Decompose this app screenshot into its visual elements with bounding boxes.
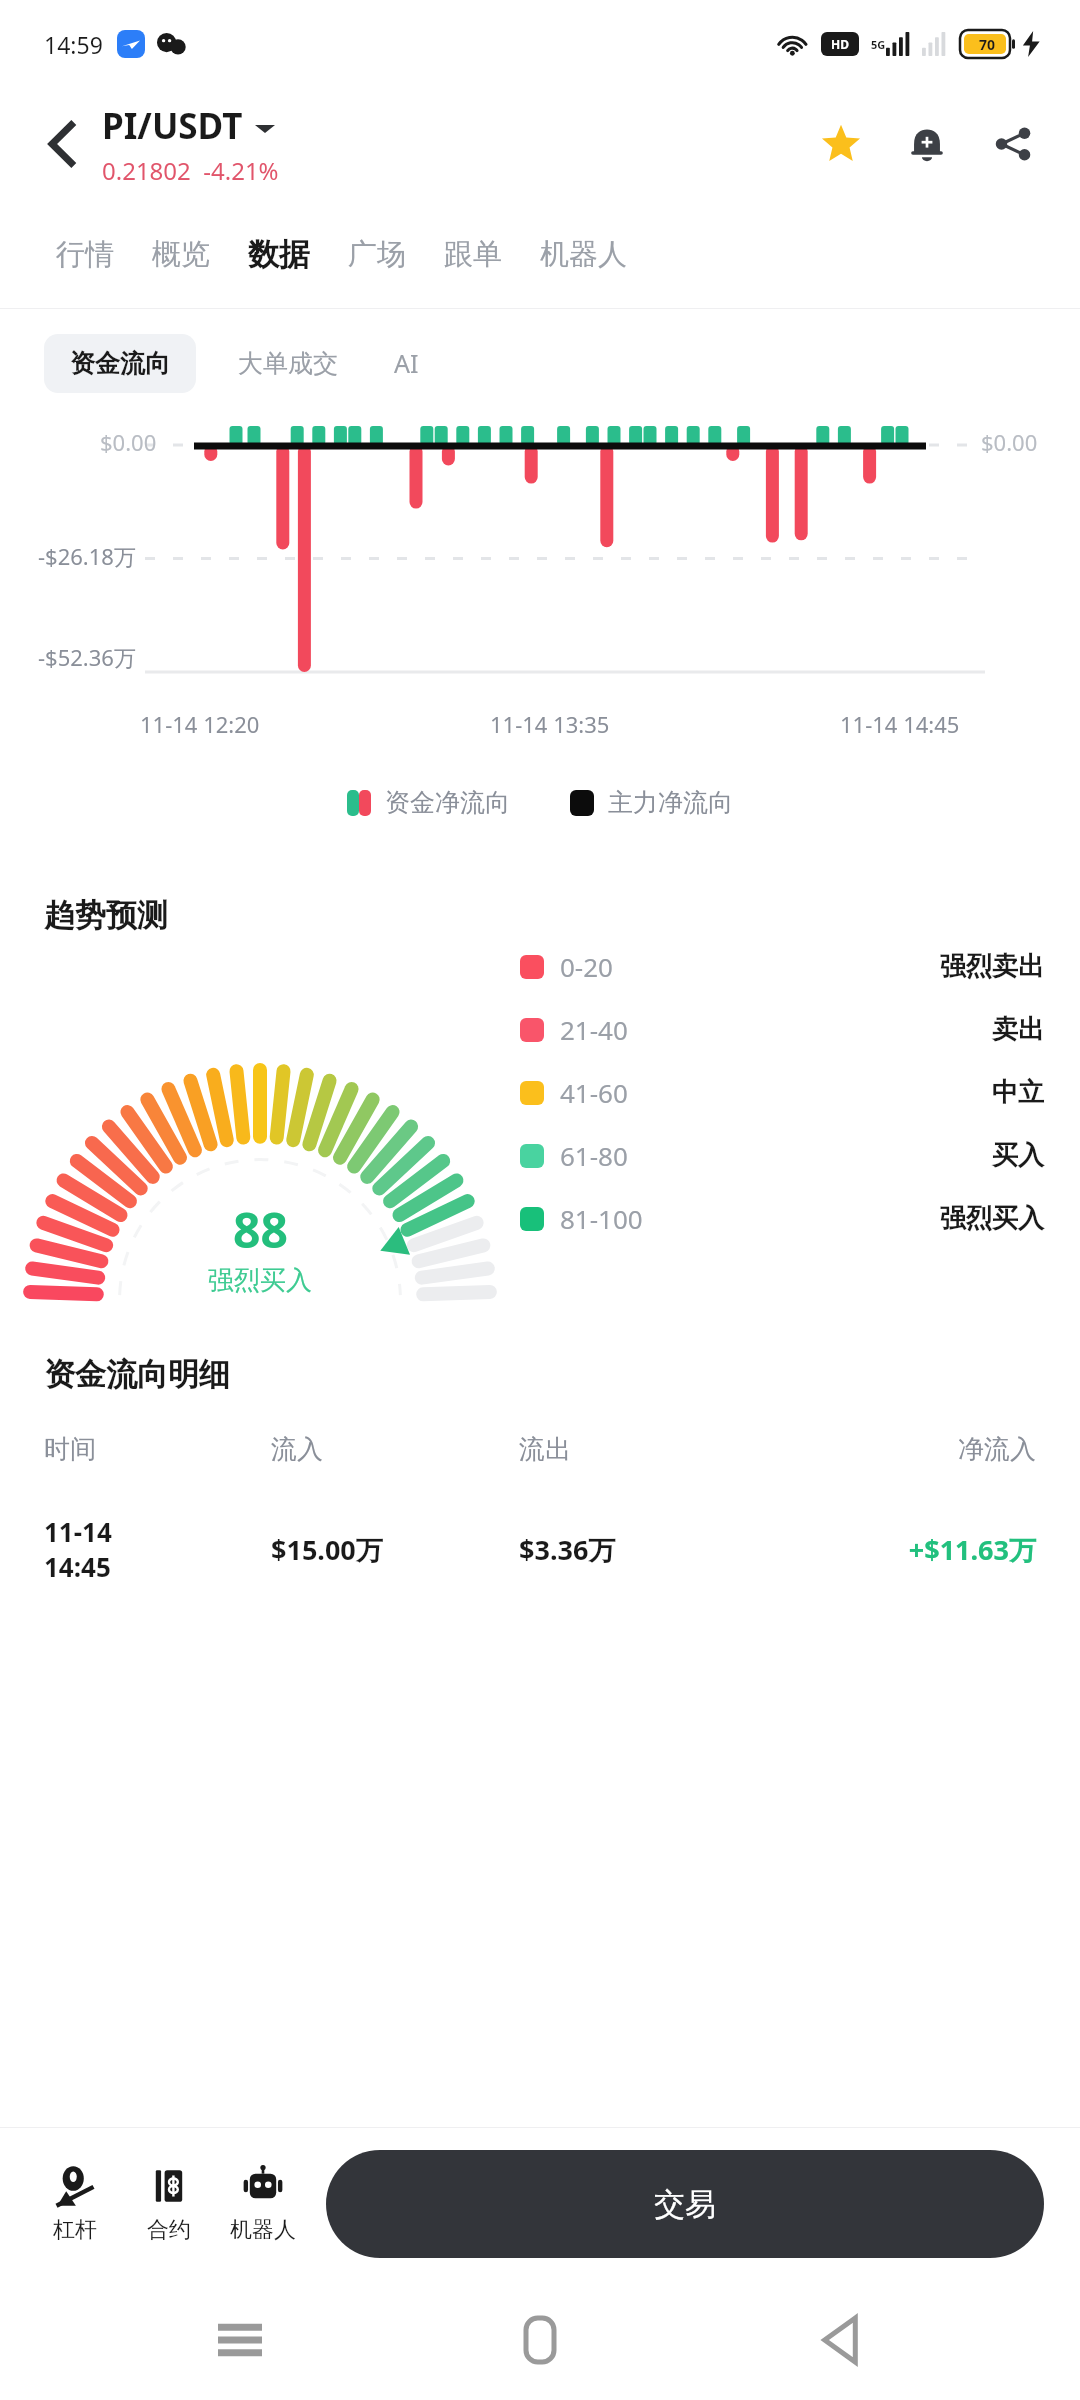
staticText: 11-14 14:45: [840, 709, 960, 739]
staticText: $15.00万: [271, 1531, 519, 1568]
staticText: 交易: [654, 2185, 716, 2224]
staticText: 机器人: [230, 2216, 296, 2244]
button[interactable]: 广场: [336, 226, 418, 283]
staticText: 11-14 13:35: [490, 709, 610, 739]
button[interactable]: Back: [780, 2280, 900, 2400]
button[interactable]: Share: [982, 113, 1044, 175]
staticText: 61-80: [560, 1138, 628, 1173]
button[interactable]: Back: [36, 117, 90, 171]
button[interactable]: 11-14: [44, 1504, 1036, 1594]
staticText: 0.21802 -4.21%: [102, 154, 279, 187]
staticText: 合约: [147, 2216, 191, 2244]
staticText: PI/USDT: [102, 102, 243, 150]
staticText: AI: [394, 346, 419, 380]
staticText: 跟单: [444, 236, 502, 273]
staticText: 5G: [871, 37, 886, 52]
button[interactable]: 合约: [122, 2158, 216, 2250]
staticText: 中立: [992, 1076, 1044, 1109]
button[interactable]: Favorite: [810, 113, 872, 175]
staticText: 时间: [44, 1433, 271, 1466]
button[interactable]: 大单成交: [218, 334, 358, 393]
staticText: 资金流向: [70, 348, 170, 379]
staticText: 大单成交: [238, 348, 338, 379]
staticText: HD: [831, 36, 849, 52]
button[interactable]: 交易: [326, 2150, 1044, 2258]
staticText: 强烈买入: [208, 1264, 312, 1297]
staticText: 流出: [519, 1433, 767, 1466]
staticText: 杠杆: [53, 2216, 97, 2244]
staticText: 广场: [348, 236, 406, 273]
staticText: 11-14 12:20: [140, 709, 260, 739]
button[interactable]: 概览: [140, 226, 222, 283]
button[interactable]: 数据: [236, 225, 322, 284]
staticText: 14:45: [44, 1549, 111, 1584]
staticText: 21-40: [560, 1012, 628, 1047]
staticText: $3.36万: [519, 1531, 767, 1568]
staticText: -$26.18万: [38, 541, 136, 571]
staticText: $0.00: [100, 427, 157, 457]
staticText: 11-14: [44, 1514, 112, 1549]
staticText: 净流入: [767, 1433, 1036, 1466]
staticText: 81-100: [560, 1201, 643, 1236]
staticText: $0.00: [981, 427, 1038, 457]
button[interactable]: AI: [374, 332, 439, 394]
staticText: 买入: [992, 1139, 1044, 1172]
staticText: 强烈卖出: [940, 950, 1044, 983]
button[interactable]: 行情: [44, 226, 126, 283]
button[interactable]: Home: [480, 2280, 600, 2400]
staticText: 0-20: [560, 949, 613, 984]
staticText: 88: [233, 1197, 288, 1262]
staticText: 趋势预测: [44, 896, 168, 935]
staticText: 14:59: [44, 29, 103, 60]
button[interactable]: 跟单: [432, 226, 514, 283]
staticText: 41-60: [560, 1075, 628, 1110]
staticText: 数据: [248, 235, 310, 274]
staticText: +$11.63万: [767, 1531, 1036, 1568]
staticText: 资金流向明细: [44, 1355, 230, 1394]
staticText: 主力净流向: [608, 787, 733, 818]
staticText: 卖出: [992, 1013, 1044, 1046]
staticText: 行情: [56, 236, 114, 273]
button[interactable]: PI/USDT: [102, 102, 275, 150]
staticText: 机器人: [540, 236, 627, 273]
button[interactable]: Alerts: [896, 113, 958, 175]
button[interactable]: 机器人: [528, 226, 639, 283]
staticText: 70: [979, 35, 996, 54]
button[interactable]: 杠杆: [28, 2158, 122, 2250]
staticText: 强烈买入: [940, 1202, 1044, 1235]
staticText: 概览: [152, 236, 210, 273]
staticText: -$52.36万: [38, 642, 136, 672]
button[interactable]: Recents: [180, 2280, 300, 2400]
staticText: 资金净流向: [385, 787, 510, 818]
button[interactable]: 机器人: [216, 2158, 310, 2250]
button[interactable]: 资金流向: [44, 334, 196, 393]
staticText: 流入: [271, 1433, 519, 1466]
